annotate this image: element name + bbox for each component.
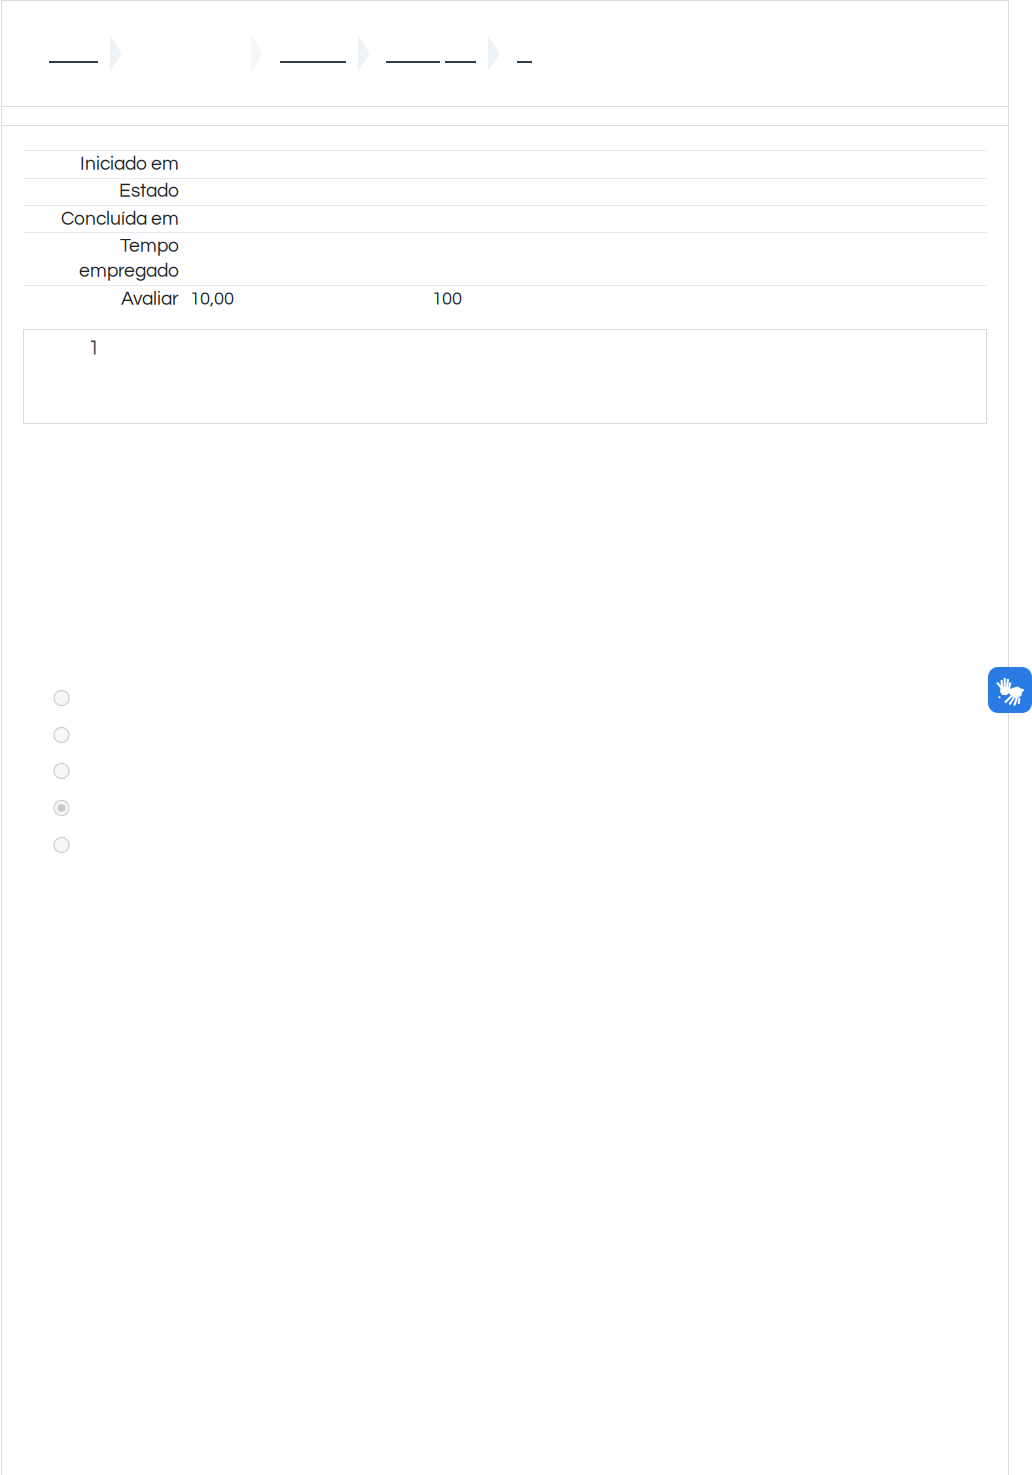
staticText: Tempo <box>120 236 179 256</box>
button[interactable]: Breadcrumb link <box>386 41 440 63</box>
staticText: Iniciado em <box>80 154 179 174</box>
staticText: Avaliar <box>121 289 179 309</box>
staticText: Estado <box>119 181 179 201</box>
button[interactable]: Sign language accessibility <box>988 667 1032 713</box>
staticText: 100 <box>432 290 462 308</box>
button[interactable]: Breadcrumb link <box>280 41 346 63</box>
button[interactable]: Selected answer option <box>24 790 624 826</box>
staticText: Concluída em <box>61 209 179 229</box>
button[interactable]: Breadcrumb link <box>49 41 98 63</box>
staticText: empregado <box>79 261 179 281</box>
staticText: 10,00 <box>190 290 234 308</box>
button[interactable]: Breadcrumb link <box>517 41 532 63</box>
button[interactable]: Breadcrumb link <box>445 41 476 63</box>
staticText: 1 <box>88 337 100 359</box>
